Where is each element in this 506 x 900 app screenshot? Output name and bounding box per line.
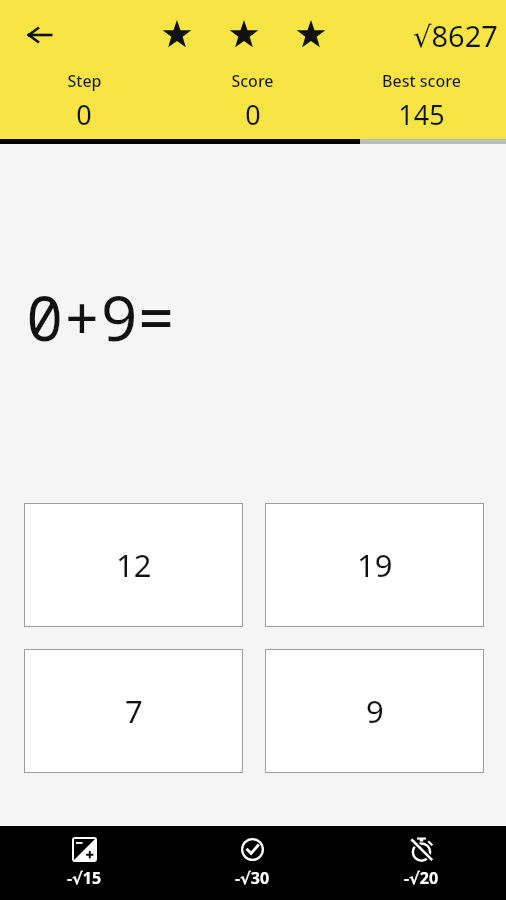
staticText: Best score (382, 70, 461, 92)
staticText: -√30 (235, 867, 270, 889)
button[interactable]: 9 (265, 649, 484, 773)
staticText: 0 (245, 96, 261, 133)
staticText: 9 (366, 690, 384, 732)
button[interactable]: 12 (24, 503, 243, 627)
staticText: Score (231, 70, 274, 92)
staticText: 12 (116, 544, 152, 586)
button[interactable]: Exposure (0, 829, 168, 897)
button[interactable]: Back (16, 11, 64, 59)
staticText: Step (67, 70, 102, 92)
staticText: 0 (76, 96, 92, 133)
staticText: -√15 (67, 867, 102, 889)
button[interactable]: Check (168, 829, 337, 897)
staticText: 7 (125, 690, 143, 732)
staticText: 0+9= (26, 275, 175, 359)
staticText: 145 (398, 96, 445, 133)
button[interactable]: 19 (265, 503, 484, 627)
staticText: √8627 (413, 16, 498, 55)
button[interactable]: Timer off (337, 829, 506, 897)
staticText: -√20 (404, 867, 439, 889)
staticText: 19 (357, 544, 393, 586)
button[interactable]: 7 (24, 649, 243, 773)
